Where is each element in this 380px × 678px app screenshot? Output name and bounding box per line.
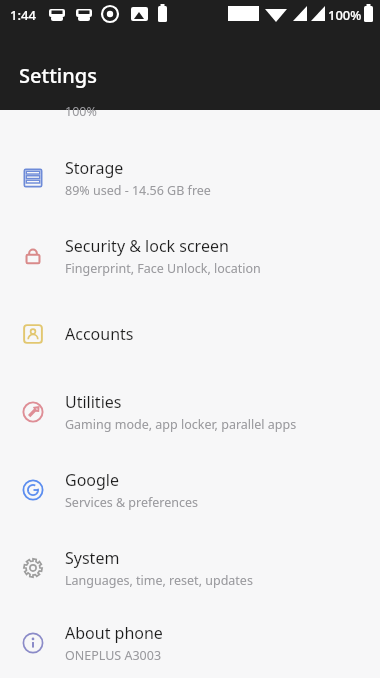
other: Accounts: [21, 322, 45, 346]
staticText: 100%: [65, 103, 97, 120]
button[interactable]: Accounts: [0, 295, 380, 373]
staticText: Languages, time, reset, updates: [65, 572, 253, 589]
staticText: 89% used - 14.56 GB free: [65, 182, 211, 199]
other: About phone: [21, 631, 45, 655]
button[interactable]: System: [0, 529, 380, 607]
staticText: About phone: [65, 622, 163, 644]
staticText: 1:44: [10, 6, 36, 24]
button[interactable]: Google: [0, 451, 380, 529]
staticText: System: [65, 547, 120, 569]
staticText: 100%: [328, 6, 362, 24]
button[interactable]: Storage: [0, 139, 380, 217]
button[interactable]: About phone: [0, 607, 380, 678]
staticText: Fingerprint, Face Unlock, location: [65, 260, 261, 277]
staticText: Security & lock screen: [65, 235, 229, 257]
other: Utilities: [21, 400, 45, 424]
staticText: Gaming mode, app locker, parallel apps: [65, 416, 297, 433]
other: Google: [21, 478, 45, 502]
other: Storage: [21, 166, 45, 190]
staticText: Accounts: [65, 323, 134, 345]
staticText: ONEPLUS A3003: [65, 647, 162, 664]
button[interactable]: Security and lock screen: [0, 217, 380, 295]
staticText: Utilities: [65, 391, 122, 413]
staticText: Settings: [19, 62, 97, 89]
staticText: Google: [65, 469, 120, 491]
other: Security and lock screen: [21, 244, 45, 268]
button[interactable]: Utilities: [0, 373, 380, 451]
staticText: Storage: [65, 157, 124, 179]
staticText: Services & preferences: [65, 494, 199, 511]
other: System: [21, 556, 45, 580]
